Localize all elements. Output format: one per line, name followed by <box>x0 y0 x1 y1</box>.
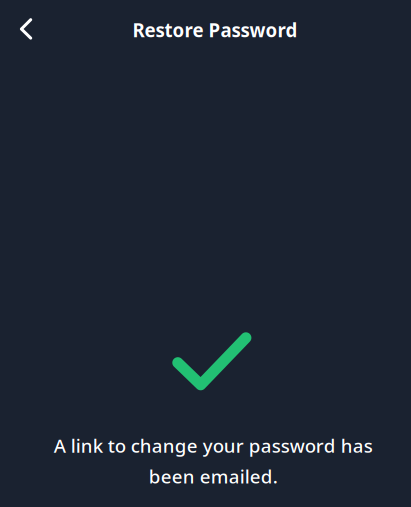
staticText: Restore Password <box>132 18 297 42</box>
staticText: A link to change your password has been … <box>53 433 372 489</box>
button[interactable]: Back <box>4 8 48 52</box>
